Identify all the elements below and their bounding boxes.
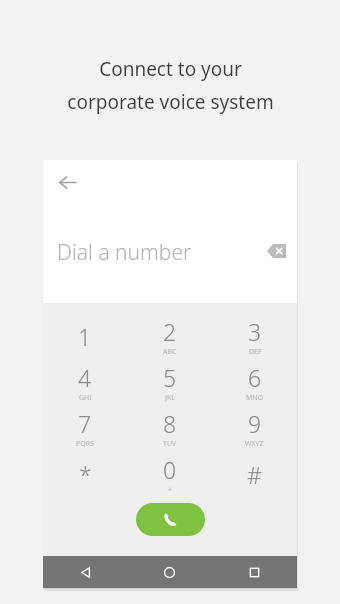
staticText: PQRS bbox=[76, 439, 94, 449]
button[interactable]: 7 bbox=[43, 405, 127, 451]
staticText: corporate voice system bbox=[67, 89, 274, 115]
staticText: 5 bbox=[163, 362, 177, 393]
button[interactable]: # bbox=[212, 451, 297, 497]
staticText: * bbox=[79, 459, 92, 490]
button[interactable]: 2 bbox=[127, 313, 212, 359]
staticText: + bbox=[168, 485, 173, 495]
staticText: GHI bbox=[79, 393, 92, 403]
staticText: WXYZ bbox=[245, 439, 264, 449]
button[interactable]: Recent apps bbox=[212, 556, 297, 588]
staticText: 3 bbox=[248, 316, 262, 347]
button[interactable]: Back bbox=[43, 556, 127, 588]
staticText: ABC bbox=[163, 347, 177, 357]
button[interactable]: 0 bbox=[127, 451, 212, 497]
staticText: # bbox=[247, 459, 262, 490]
button[interactable]: 3 bbox=[212, 313, 297, 359]
button[interactable]: 5 bbox=[127, 359, 212, 405]
button[interactable]: 8 bbox=[127, 405, 212, 451]
staticText: DEF bbox=[249, 347, 262, 357]
staticText: 9 bbox=[248, 408, 262, 439]
button[interactable]: Home bbox=[127, 556, 212, 588]
button[interactable]: Call bbox=[136, 503, 205, 536]
button[interactable]: * bbox=[43, 451, 127, 497]
button[interactable]: Backspace bbox=[258, 232, 295, 269]
staticText: 8 bbox=[163, 408, 177, 439]
staticText: MNO bbox=[246, 393, 264, 403]
staticText: 0 bbox=[163, 454, 177, 485]
staticText: 4 bbox=[78, 362, 92, 393]
staticText: 2 bbox=[163, 316, 177, 347]
staticText: 6 bbox=[248, 362, 262, 393]
button[interactable]: 4 bbox=[43, 359, 127, 405]
button[interactable]: 1 bbox=[43, 313, 127, 359]
button[interactable]: 6 bbox=[212, 359, 297, 405]
staticText: TUV bbox=[163, 439, 177, 449]
staticText: JKL bbox=[165, 393, 175, 403]
staticText: 1 bbox=[78, 321, 92, 352]
staticText: 7 bbox=[78, 408, 92, 439]
staticText: Dial a number bbox=[57, 238, 192, 267]
button[interactable]: 9 bbox=[212, 405, 297, 451]
button[interactable]: Back bbox=[45, 160, 89, 204]
staticText: Connect to your bbox=[99, 56, 242, 82]
